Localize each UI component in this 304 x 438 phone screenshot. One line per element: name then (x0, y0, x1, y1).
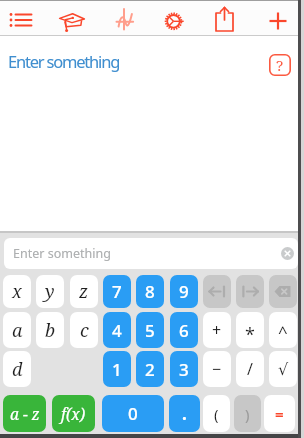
staticText: Enter something (8, 50, 120, 72)
button[interactable]: * (236, 312, 264, 348)
staticText: z (79, 279, 89, 304)
staticText: ? (276, 55, 284, 75)
button[interactable] (236, 275, 264, 308)
staticText: c (80, 318, 89, 343)
button[interactable]: Enter something (4, 238, 298, 269)
button[interactable]: = (264, 395, 295, 432)
button[interactable]: c (70, 312, 98, 348)
staticText: 1 (112, 358, 122, 381)
button[interactable] (269, 275, 297, 308)
button[interactable]: + (203, 312, 231, 348)
button[interactable] (110, 4, 144, 34)
button[interactable]: x (3, 275, 31, 308)
button[interactable]: 2 (136, 351, 164, 387)
button[interactable]: 7 (103, 275, 131, 308)
button[interactable]: 9 (170, 275, 198, 308)
button[interactable]: ? (269, 54, 291, 76)
button[interactable] (54, 2, 90, 34)
button[interactable]: f(x) (52, 395, 95, 432)
button[interactable]: z (70, 275, 98, 308)
staticText: x (12, 279, 22, 304)
button[interactable] (203, 275, 231, 308)
button[interactable]: ( (203, 395, 230, 432)
staticText: 4 (112, 319, 122, 342)
staticText: 3 (179, 358, 189, 381)
button[interactable]: . (169, 395, 200, 432)
button[interactable]: − (203, 351, 231, 387)
staticText: f(x) (61, 403, 86, 424)
button[interactable]: 6 (170, 312, 198, 348)
staticText: a (12, 318, 23, 343)
button[interactable] (160, 8, 185, 34)
staticText: / (247, 358, 253, 380)
staticText: y (45, 279, 55, 304)
staticText: * (245, 322, 255, 347)
button[interactable] (212, 3, 237, 34)
button[interactable]: d (3, 351, 31, 387)
button[interactable] (281, 247, 294, 260)
staticText: 6 (179, 319, 189, 342)
button[interactable]: / (236, 351, 264, 387)
button[interactable]: b (36, 312, 64, 348)
staticText: = (275, 404, 284, 424)
staticText: a - z (10, 403, 40, 424)
button[interactable] (4, 3, 38, 34)
staticText: ) (245, 404, 250, 424)
staticText: − (212, 358, 222, 380)
staticText: . (182, 402, 187, 425)
staticText: 7 (112, 280, 122, 303)
button[interactable]: a (3, 312, 31, 348)
button[interactable]: a - z (3, 395, 46, 432)
staticText: 0 (128, 402, 138, 425)
staticText: + (212, 319, 222, 341)
staticText: ( (214, 404, 219, 424)
button[interactable]: √ (269, 351, 297, 387)
staticText: √ (278, 360, 289, 379)
button[interactable]: 4 (103, 312, 131, 348)
staticText: b (45, 318, 56, 343)
button[interactable] (266, 8, 290, 34)
button[interactable]: 5 (136, 312, 164, 348)
staticText: Enter something (13, 245, 111, 262)
button[interactable]: 0 (102, 395, 164, 432)
button[interactable]: y (36, 275, 64, 308)
button[interactable]: 3 (170, 351, 198, 387)
staticText: d (12, 357, 23, 382)
button[interactable]: 1 (103, 351, 131, 387)
staticText: 8 (145, 280, 155, 303)
staticText: 5 (145, 319, 155, 342)
staticText: ^ (278, 320, 288, 343)
staticText: 9 (179, 280, 189, 303)
button[interactable]: ) (234, 395, 261, 432)
button[interactable]: 8 (136, 275, 164, 308)
staticText: 2 (145, 358, 155, 381)
button[interactable]: ^ (269, 312, 297, 348)
button[interactable]: Enter something (8, 50, 120, 72)
